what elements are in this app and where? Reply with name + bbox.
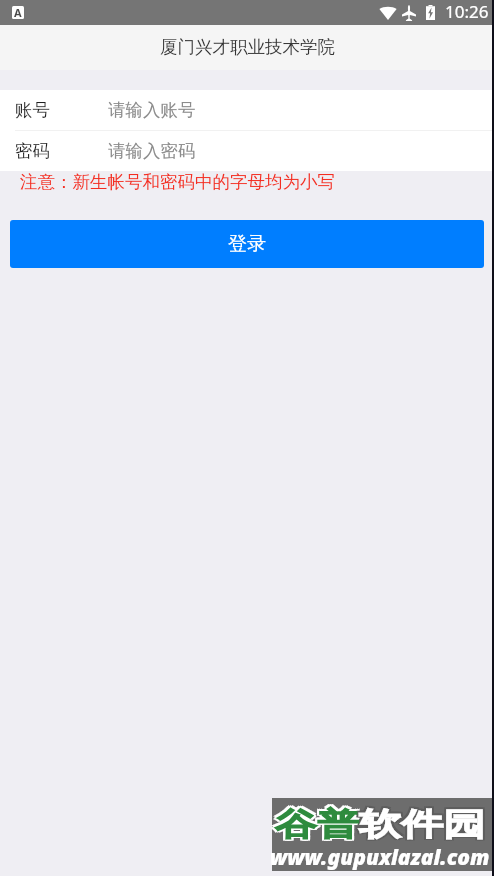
- staticText: 软件园: [357, 805, 483, 844]
- staticText: 谷普: [275, 805, 359, 844]
- staticText: 注意：新生帐号和密码中的字母均为小写: [20, 171, 335, 193]
- staticText: 谷普: [275, 803, 359, 843]
- staticText: 账号: [15, 99, 50, 121]
- staticText: 谷普: [273, 805, 357, 844]
- staticText: 谷普: [273, 806, 357, 846]
- other: Airplane mode on: [402, 5, 416, 21]
- other: Input method: [12, 6, 24, 19]
- staticText: 谷普: [275, 806, 359, 846]
- staticText: 密码: [15, 140, 50, 162]
- staticText: 谷普: [273, 805, 357, 844]
- staticText: 软件园: [357, 806, 483, 846]
- staticText: 软件园: [361, 806, 487, 846]
- staticText: 谷普: [277, 803, 361, 843]
- staticText: 软件园: [357, 803, 483, 843]
- staticText: 谷普: [273, 803, 357, 843]
- staticText: 请输入账号: [108, 99, 196, 121]
- staticText: 谷普: [273, 806, 357, 846]
- staticText: 谷普: [277, 805, 361, 844]
- staticText: 软件园: [361, 803, 487, 843]
- button[interactable]: 登录: [10, 220, 484, 268]
- staticText: 软件园: [359, 805, 485, 844]
- other: Wi-Fi signal: [379, 6, 397, 20]
- staticText: 谷普: [277, 806, 361, 846]
- staticText: 谷普: [275, 806, 359, 846]
- staticText: 谷普: [277, 803, 361, 843]
- staticText: 软件园: [359, 806, 485, 846]
- staticText: 软件园: [361, 805, 487, 844]
- staticText: 谷普: [275, 803, 359, 843]
- staticText: 谷普: [277, 806, 361, 846]
- staticText: 请输入密码: [108, 140, 196, 162]
- button[interactable]: 账号: [0, 90, 494, 130]
- staticText: 10:26: [445, 0, 489, 23]
- staticText: www.gupuxlazal.com: [270, 843, 490, 872]
- staticText: 软件园: [359, 803, 485, 843]
- staticText: 登录: [228, 232, 266, 256]
- button[interactable]: 密码: [0, 131, 494, 171]
- staticText: 谷普: [273, 803, 357, 843]
- staticText: 厦门兴才职业技术学院: [160, 36, 335, 58]
- staticText: A: [14, 6, 22, 18]
- staticText: 谷普: [277, 805, 361, 844]
- other: Battery charging: [426, 5, 435, 20]
